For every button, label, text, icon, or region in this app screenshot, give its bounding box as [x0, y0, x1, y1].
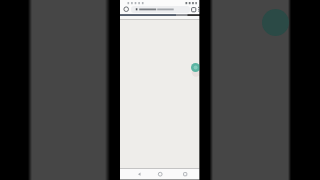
button[interactable] — [131, 6, 190, 13]
button[interactable] — [123, 6, 129, 12]
button[interactable] — [191, 63, 200, 72]
button[interactable] — [156, 170, 164, 178]
button[interactable] — [181, 170, 189, 178]
button[interactable] — [197, 6, 200, 13]
button[interactable] — [135, 170, 143, 178]
button[interactable] — [191, 7, 196, 12]
